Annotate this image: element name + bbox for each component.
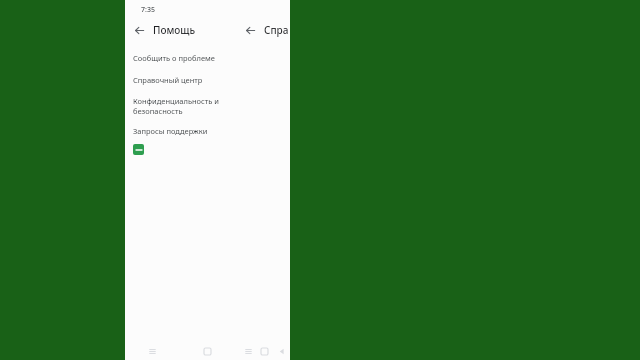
staticText: Конфиденциальность и безопасность <box>133 96 219 116</box>
button[interactable]: Главная <box>256 342 273 360</box>
staticText: Спра <box>264 23 289 37</box>
button[interactable]: Запросы поддержки <box>125 120 290 142</box>
button[interactable]: Сообщить о проблеме <box>125 47 290 69</box>
staticText: 7:35 <box>141 5 155 15</box>
staticText: Запросы поддержки <box>133 126 208 136</box>
button[interactable]: Главная <box>180 342 235 360</box>
button[interactable]: Недавние <box>125 342 180 360</box>
button[interactable]: Назад <box>240 20 260 40</box>
button[interactable]: Недавние <box>240 342 256 360</box>
staticText: Сообщить о проблеме <box>133 53 215 63</box>
button[interactable]: Открыть <box>133 144 144 155</box>
button[interactable]: Справочный центр <box>125 69 290 91</box>
button[interactable]: Назад <box>273 342 290 360</box>
staticText: Помощь <box>153 23 196 37</box>
button[interactable]: Назад <box>235 342 290 360</box>
button[interactable]: Конфиденциальность и безопасность <box>125 91 290 120</box>
button[interactable]: Назад <box>129 20 149 40</box>
staticText: Справочный центр <box>133 75 203 85</box>
